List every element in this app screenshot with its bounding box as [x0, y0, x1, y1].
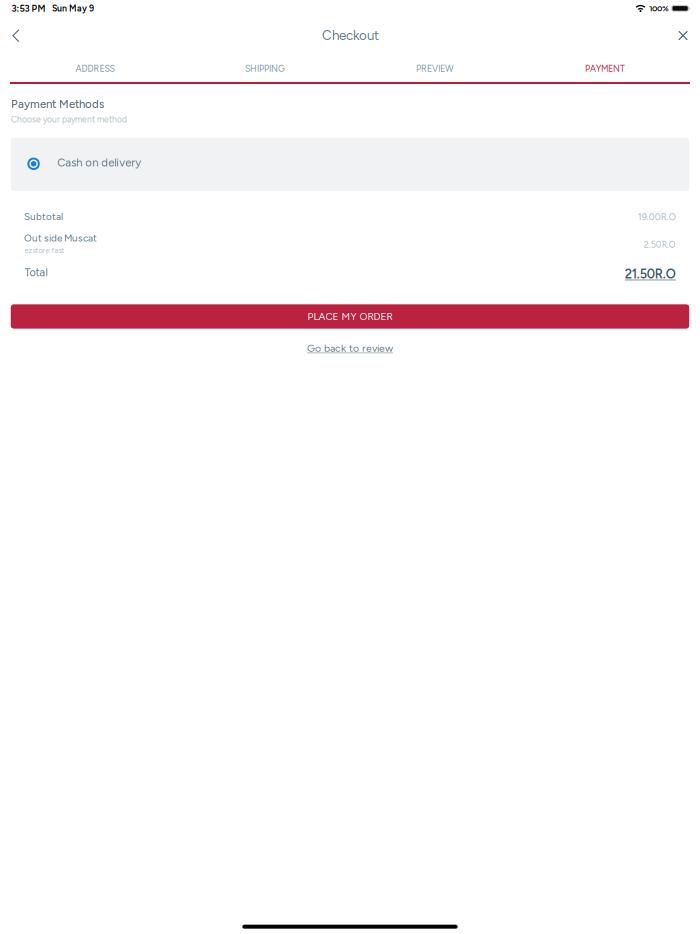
- staticText: Sun May 9: [52, 3, 94, 14]
- staticText: 2.50R.O: [644, 239, 676, 250]
- button[interactable]: Go back to review: [295, 340, 405, 356]
- staticText: 100%: [649, 3, 669, 13]
- staticText: PREVIEW: [416, 63, 454, 74]
- button[interactable]: PREVIEW: [350, 58, 520, 80]
- staticText: PLACE MY ORDER: [307, 310, 392, 323]
- button[interactable]: PAYMENT: [520, 58, 690, 80]
- staticText: Choose your payment method: [11, 114, 127, 125]
- staticText: 21.50R.O: [625, 266, 676, 282]
- staticText: Subtotal: [24, 211, 63, 222]
- staticText: SHIPPING: [245, 63, 285, 74]
- button[interactable]: Close: [670, 23, 696, 49]
- staticText: ADDRESS: [75, 63, 114, 74]
- staticText: Payment Methods: [11, 97, 104, 111]
- staticText: Cash on delivery: [57, 156, 141, 169]
- staticText: Out side Muscat: [24, 232, 97, 244]
- button[interactable]: ADDRESS: [10, 58, 180, 80]
- button[interactable]: Back: [3, 23, 29, 49]
- staticText: 19.00R.O: [638, 211, 676, 222]
- staticText: Checkout: [322, 27, 379, 43]
- staticText: Go back to review: [307, 342, 393, 354]
- button[interactable]: Cash on delivery: [11, 138, 689, 191]
- staticText: 3:53 PM: [11, 3, 45, 14]
- staticText: PAYMENT: [585, 63, 625, 74]
- button[interactable]: PLACE MY ORDER: [11, 304, 689, 329]
- staticText: ezstore fast: [25, 246, 65, 255]
- button[interactable]: SHIPPING: [180, 58, 350, 80]
- staticText: Total: [25, 266, 48, 279]
